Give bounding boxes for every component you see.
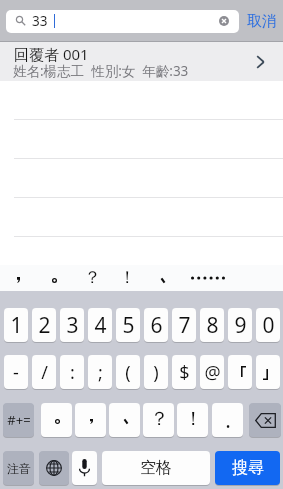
staticText: 搜尋 (232, 458, 264, 478)
staticText: 空格 (140, 458, 172, 478)
button[interactable]: Voice input (72, 451, 97, 485)
button[interactable]: ？ (74, 265, 110, 291)
button[interactable] (0, 265, 36, 291)
staticText: 0 (262, 311, 275, 340)
button[interactable]: 9 (228, 308, 252, 342)
button[interactable]: . (212, 403, 243, 437)
button[interactable]: Backspace (249, 403, 281, 437)
button[interactable]: 注音 (3, 451, 34, 485)
button[interactable]: ) (144, 355, 168, 389)
button[interactable]: - (4, 355, 28, 389)
button[interactable] (0, 198, 283, 237)
staticText: 注音 (7, 461, 31, 476)
button[interactable]: 回覆者 001 (0, 42, 283, 81)
button[interactable] (256, 355, 280, 389)
button[interactable]: 3 (60, 308, 84, 342)
staticText: 2 (38, 311, 51, 340)
button[interactable]: 7 (172, 308, 196, 342)
button[interactable]: @ (200, 355, 224, 389)
button[interactable] (109, 403, 140, 437)
button[interactable]: 4 (88, 308, 112, 342)
button[interactable]: Clear text (219, 16, 229, 26)
button[interactable] (0, 120, 283, 159)
staticText: ？ (150, 407, 169, 431)
staticText: 9 (234, 311, 247, 340)
staticText: : (70, 360, 75, 385)
staticText: @ (204, 360, 221, 385)
staticText: 8 (206, 311, 219, 340)
staticText: 回覆者 001 (14, 44, 89, 64)
button[interactable] (0, 159, 283, 198)
other: Open detail (256, 55, 265, 69)
button[interactable] (186, 265, 230, 291)
button[interactable] (0, 81, 283, 120)
button[interactable] (0, 237, 283, 276)
staticText: 取消 (247, 12, 277, 31)
button[interactable] (36, 265, 72, 291)
button[interactable]: 5 (116, 308, 140, 342)
button[interactable]: ！ (109, 265, 145, 291)
button[interactable]: ; (88, 355, 112, 389)
staticText: #+= (7, 411, 31, 429)
button[interactable]: ？ (143, 403, 174, 437)
button[interactable] (228, 355, 252, 389)
staticText: ！ (184, 407, 203, 431)
button[interactable]: 取消 (243, 9, 280, 33)
staticText: 5 (122, 311, 135, 340)
staticText: . (225, 406, 231, 435)
button[interactable]: / (32, 355, 56, 389)
button[interactable]: ( (116, 355, 140, 389)
staticText: 33 (32, 12, 48, 30)
staticText: $ (179, 360, 190, 385)
button[interactable]: 6 (144, 308, 168, 342)
staticText: - (13, 360, 19, 385)
button[interactable] (145, 265, 181, 291)
staticText: ( (125, 360, 131, 385)
staticText: 7 (178, 311, 191, 340)
staticText: ) (153, 360, 159, 385)
staticText: 3 (66, 311, 79, 340)
button[interactable] (41, 403, 72, 437)
button[interactable]: 2 (32, 308, 56, 342)
button[interactable]: ！ (177, 403, 208, 437)
staticText: 1 (10, 311, 23, 340)
staticText: 姓名:楊志工 性別:女 年齡:33 (13, 62, 189, 80)
button[interactable]: 1 (4, 308, 28, 342)
staticText: ！ (119, 267, 136, 288)
button[interactable]: #+= (3, 403, 34, 437)
button[interactable]: 0 (256, 308, 280, 342)
button[interactable]: Switch keyboard language (39, 451, 69, 485)
staticText: / (41, 360, 48, 385)
button[interactable]: $ (172, 355, 196, 389)
button[interactable]: 33 (6, 10, 239, 33)
button[interactable] (75, 403, 106, 437)
staticText: ？ (84, 267, 101, 288)
button[interactable]: 空格 (102, 451, 210, 485)
staticText: 4 (94, 311, 107, 340)
staticText: 6 (150, 311, 163, 340)
staticText: ; (98, 360, 103, 385)
button[interactable]: : (60, 355, 84, 389)
button[interactable]: 搜尋 (215, 451, 280, 485)
button[interactable]: 8 (200, 308, 224, 342)
